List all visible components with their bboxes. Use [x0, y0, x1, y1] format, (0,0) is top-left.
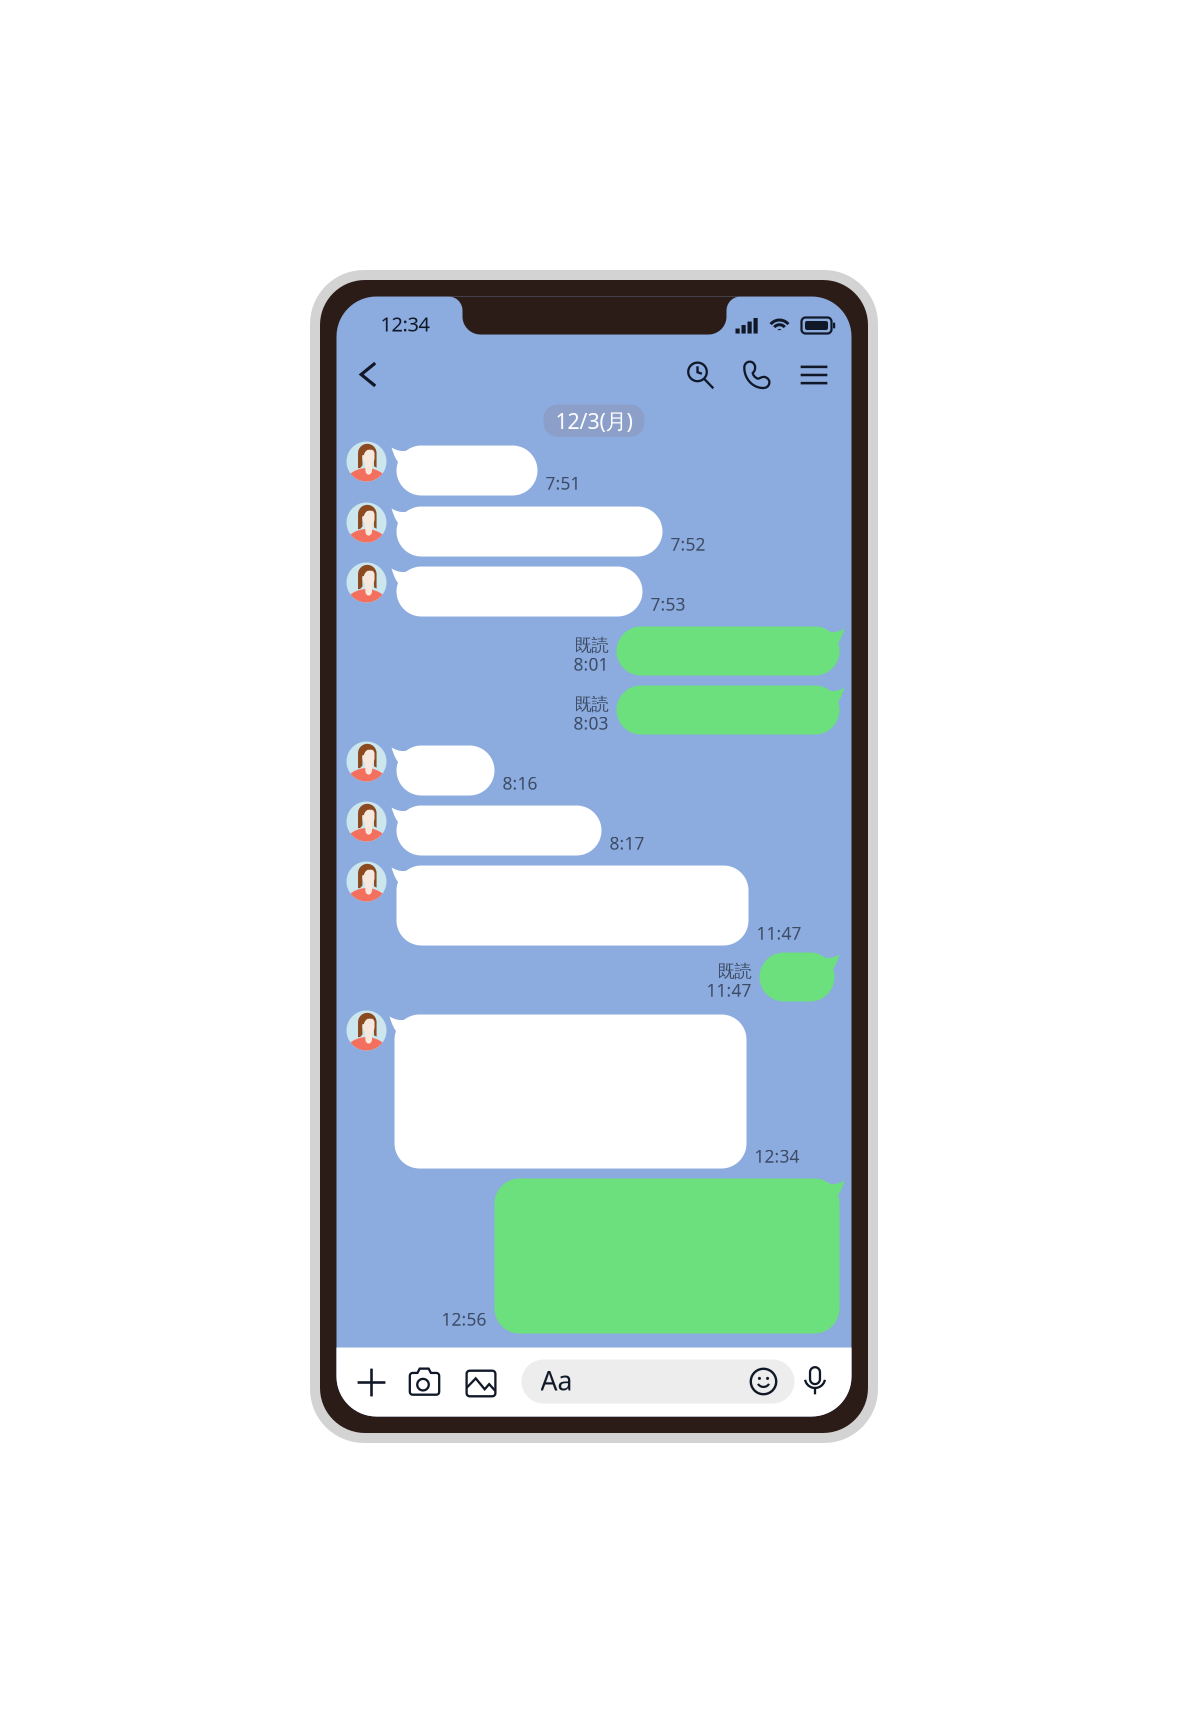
staticText: 12/3(月) [555, 406, 632, 435]
staticText: 7:51 [545, 471, 580, 494]
button[interactable]: Back [344, 349, 394, 399]
button[interactable] [396, 745, 494, 795]
button[interactable] [616, 626, 839, 675]
button[interactable] [759, 952, 834, 1001]
staticText: Aa [540, 1362, 572, 1398]
staticText: 8:16 [502, 771, 537, 794]
staticText: 8:03 [573, 711, 608, 734]
button[interactable] [616, 685, 839, 734]
button[interactable]: Menu [788, 349, 839, 400]
button[interactable] [396, 506, 662, 556]
button[interactable]: Camera [400, 1358, 449, 1407]
staticText: 11:47 [756, 921, 801, 944]
button[interactable]: Add attachment [347, 1358, 396, 1407]
staticText: 既読 [574, 693, 608, 715]
button[interactable] [396, 445, 537, 495]
button[interactable] [396, 865, 748, 945]
staticText: 12:56 [441, 1307, 486, 1330]
staticText: 7:53 [650, 592, 685, 615]
button[interactable]: Call [731, 349, 782, 400]
staticText: 7:52 [670, 532, 705, 555]
button[interactable]: Voice message [791, 1357, 838, 1404]
staticText: 12:34 [754, 1144, 799, 1167]
staticText: 8:01 [573, 652, 608, 675]
button[interactable]: Search history [674, 349, 725, 400]
staticText: 8:17 [609, 831, 644, 854]
staticText: 12:34 [380, 310, 429, 337]
staticText: 既読 [717, 960, 751, 982]
button[interactable] [494, 1178, 839, 1333]
button[interactable]: Photo library [457, 1359, 505, 1407]
staticText: 11:47 [706, 978, 751, 1001]
button[interactable] [394, 1014, 746, 1168]
button[interactable] [396, 566, 642, 616]
button[interactable]: Message [521, 1359, 794, 1403]
button[interactable] [396, 805, 601, 855]
staticText: 既読 [574, 634, 608, 656]
